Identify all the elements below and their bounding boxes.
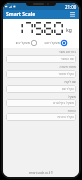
staticText: 21:00 [65,4,77,10]
staticText: שם לקוח [64,80,76,84]
button[interactable]: משקל רטוב [43,39,68,47]
staticText: smart-scale.co.il © [29,171,54,175]
staticText: משקל בקילוגרם [53,101,74,105]
staticText: kg [66,27,72,34]
button[interactable]: משקל בקילוגרם [6,99,76,107]
staticText: הערות [67,109,76,112]
staticText: משקל רטוב [44,41,60,45]
staticText: הקלד הערות [57,115,74,119]
button[interactable]: הקלד שם [6,85,76,93]
button[interactable]: שם המוצר [6,55,76,63]
button[interactable]: הקלד הערות [6,113,76,121]
button[interactable]: Menu [69,11,76,18]
staticText: הקלד שם [61,87,74,91]
staticText: Smart Scale [6,11,36,18]
staticText: הקלד מספר [58,72,74,76]
button[interactable]: משקל יבש [14,39,38,47]
staticText: שם המוצר [60,57,74,61]
staticText: משקל [68,95,76,98]
staticText: משקל יבש [15,41,30,45]
staticText: בחר סוג מוצר [58,50,76,54]
button[interactable]: הקלד מספר [6,70,76,78]
staticText: מספר תעודה [59,65,76,69]
